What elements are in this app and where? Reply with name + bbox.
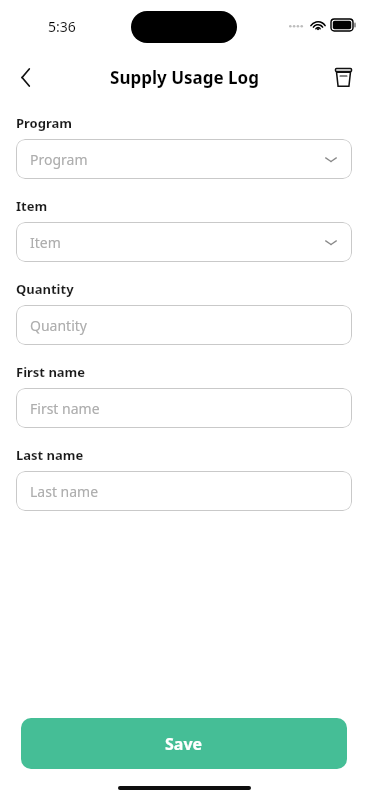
button[interactable]: Last name xyxy=(16,471,352,511)
staticText: Save xyxy=(165,733,203,755)
staticText: Quantity xyxy=(30,316,338,335)
button[interactable]: Quantity xyxy=(16,305,352,345)
button[interactable]: Save xyxy=(21,718,347,769)
button[interactable]: Back xyxy=(8,60,42,94)
staticText: Last name xyxy=(16,446,84,464)
button[interactable]: First name xyxy=(16,388,352,428)
staticText: Supply Usage Log xyxy=(110,66,259,89)
staticText: Item xyxy=(30,233,324,252)
staticText: Program xyxy=(16,114,72,132)
button[interactable]: Item xyxy=(16,222,352,262)
button[interactable]: Delete xyxy=(326,60,360,94)
button[interactable]: Program xyxy=(16,139,352,179)
staticText: First name xyxy=(16,363,86,381)
staticText: 5:36 xyxy=(48,17,76,36)
staticText: First name xyxy=(30,399,338,418)
staticText: Item xyxy=(16,197,48,215)
staticText: Program xyxy=(30,150,324,169)
staticText: Quantity xyxy=(16,280,74,298)
staticText: Last name xyxy=(30,482,338,501)
